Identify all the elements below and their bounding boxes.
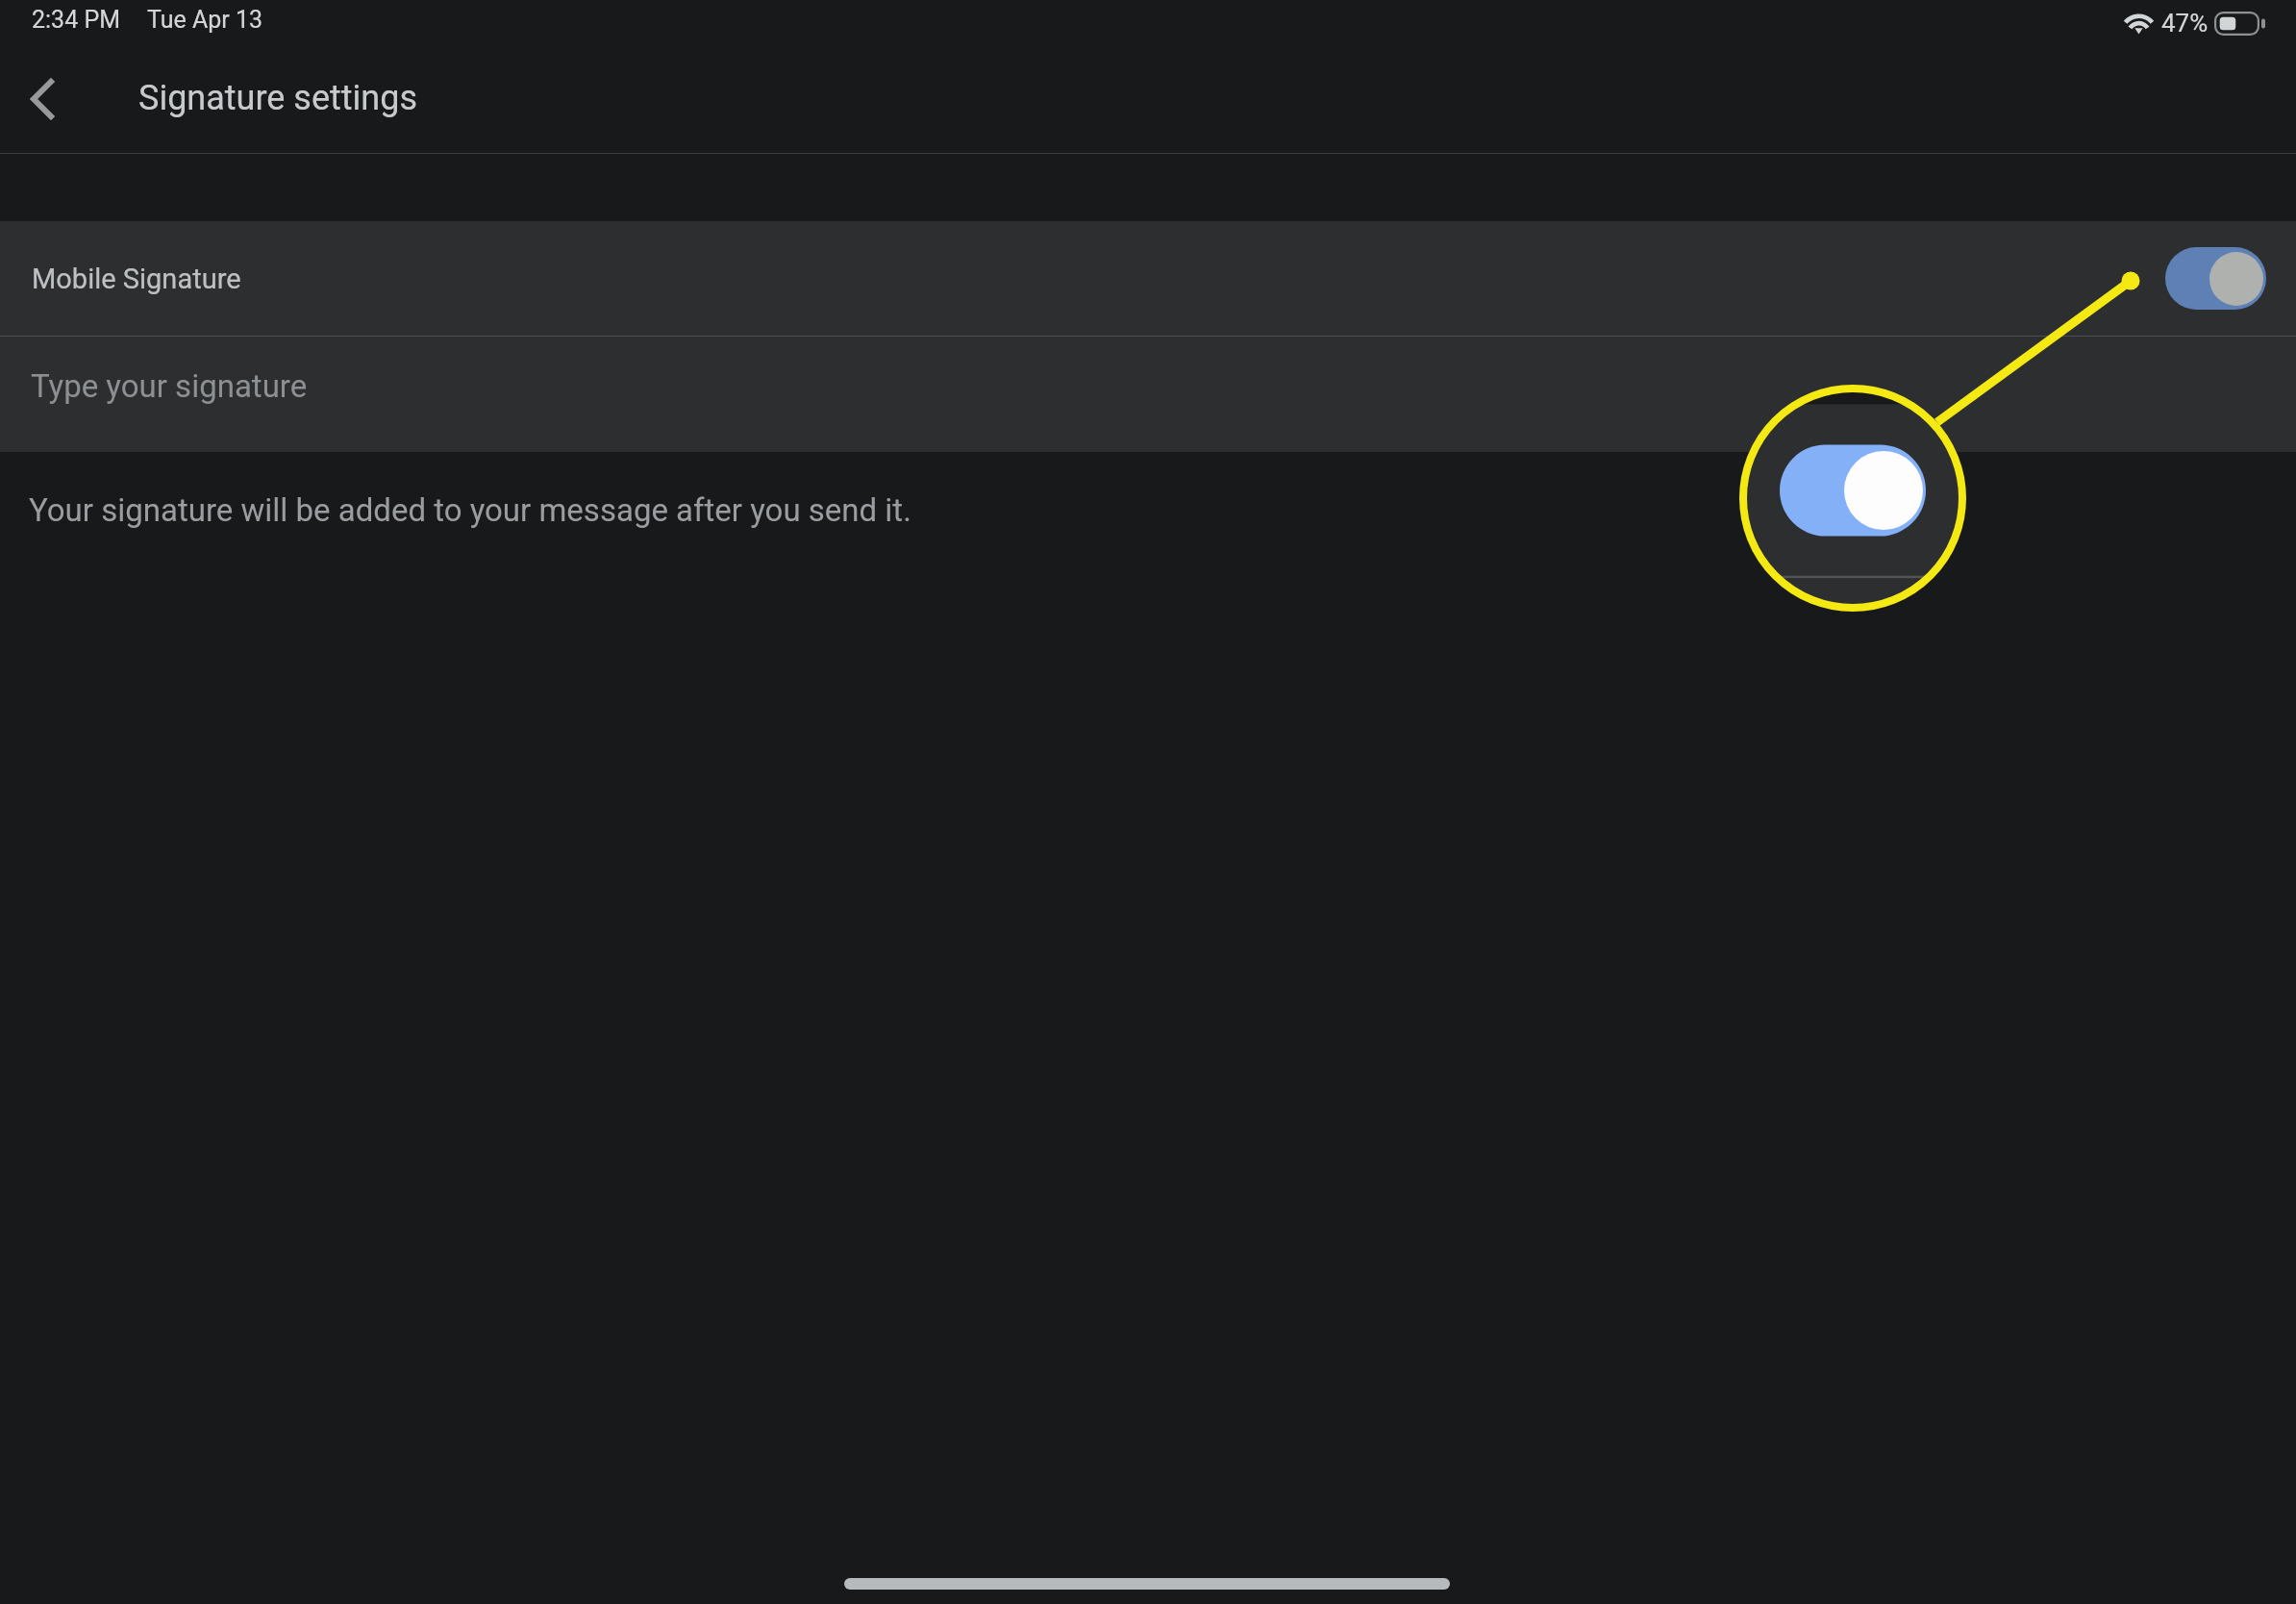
staticText: Your signature will be added to your mes…	[29, 491, 911, 529]
staticText: Signature settings	[138, 78, 417, 118]
staticText: 47%	[2161, 9, 2209, 38]
button[interactable]: Mobile Signature toggle	[2165, 247, 2266, 310]
button[interactable]: Back	[8, 64, 77, 134]
button[interactable]: Type your signature	[0, 337, 2296, 452]
staticText: Tue Apr 13	[147, 6, 263, 34]
button[interactable]: Mobile Signature	[0, 221, 2296, 336]
staticText: Type your signature	[31, 367, 308, 405]
staticText: Mobile Signature	[32, 263, 241, 295]
staticText: 2:34 PM	[32, 6, 121, 34]
